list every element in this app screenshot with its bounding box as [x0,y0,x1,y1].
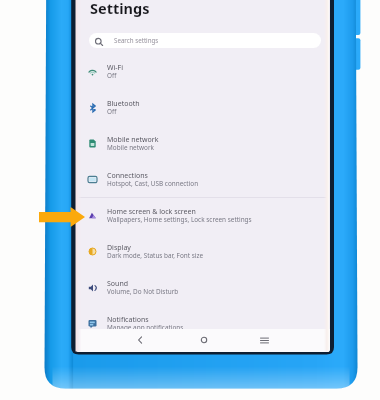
staticText: Dark mode, Status bar, Font size [107,251,204,260]
staticText: Manage app notifications [107,323,184,332]
staticText: Home screen & lock screen [107,207,196,217]
staticText: Search settings [114,36,159,44]
button[interactable]: Home [193,329,215,351]
staticText: Bluetooth [107,99,140,109]
staticText: Settings [90,0,150,18]
staticText: Sound [107,279,129,289]
staticText: Hotspot, Cast, USB connection [107,179,199,188]
staticText: Mobile network [107,143,154,152]
other: Arrow pointing to Home screen and lock s… [39,207,85,227]
button[interactable]: Home screen & lock screen [76,197,330,233]
staticText: Notifications [107,315,149,325]
button[interactable]: Wi-Fi [76,53,330,89]
staticText: Off [107,107,117,116]
button[interactable]: Sound [76,269,330,305]
button[interactable]: Search settings [89,33,321,48]
button[interactable]: Notifications [76,305,330,341]
staticText: Volume, Do Not Disturb [107,287,179,296]
staticText: Display [107,243,131,253]
button[interactable]: Back [129,329,151,351]
staticText: Wallpapers, Home settings, Lock screen s… [107,215,252,224]
button[interactable]: Recent apps [253,329,275,351]
button[interactable]: Bluetooth [76,89,330,125]
button[interactable]: Mobile network [76,125,330,161]
staticText: Connections [107,171,148,181]
staticText: Off [107,71,117,80]
button[interactable]: Connections [76,161,330,197]
staticText: Wi-Fi [107,63,124,73]
staticText: Mobile network [107,135,159,145]
button[interactable]: Display [76,233,330,269]
